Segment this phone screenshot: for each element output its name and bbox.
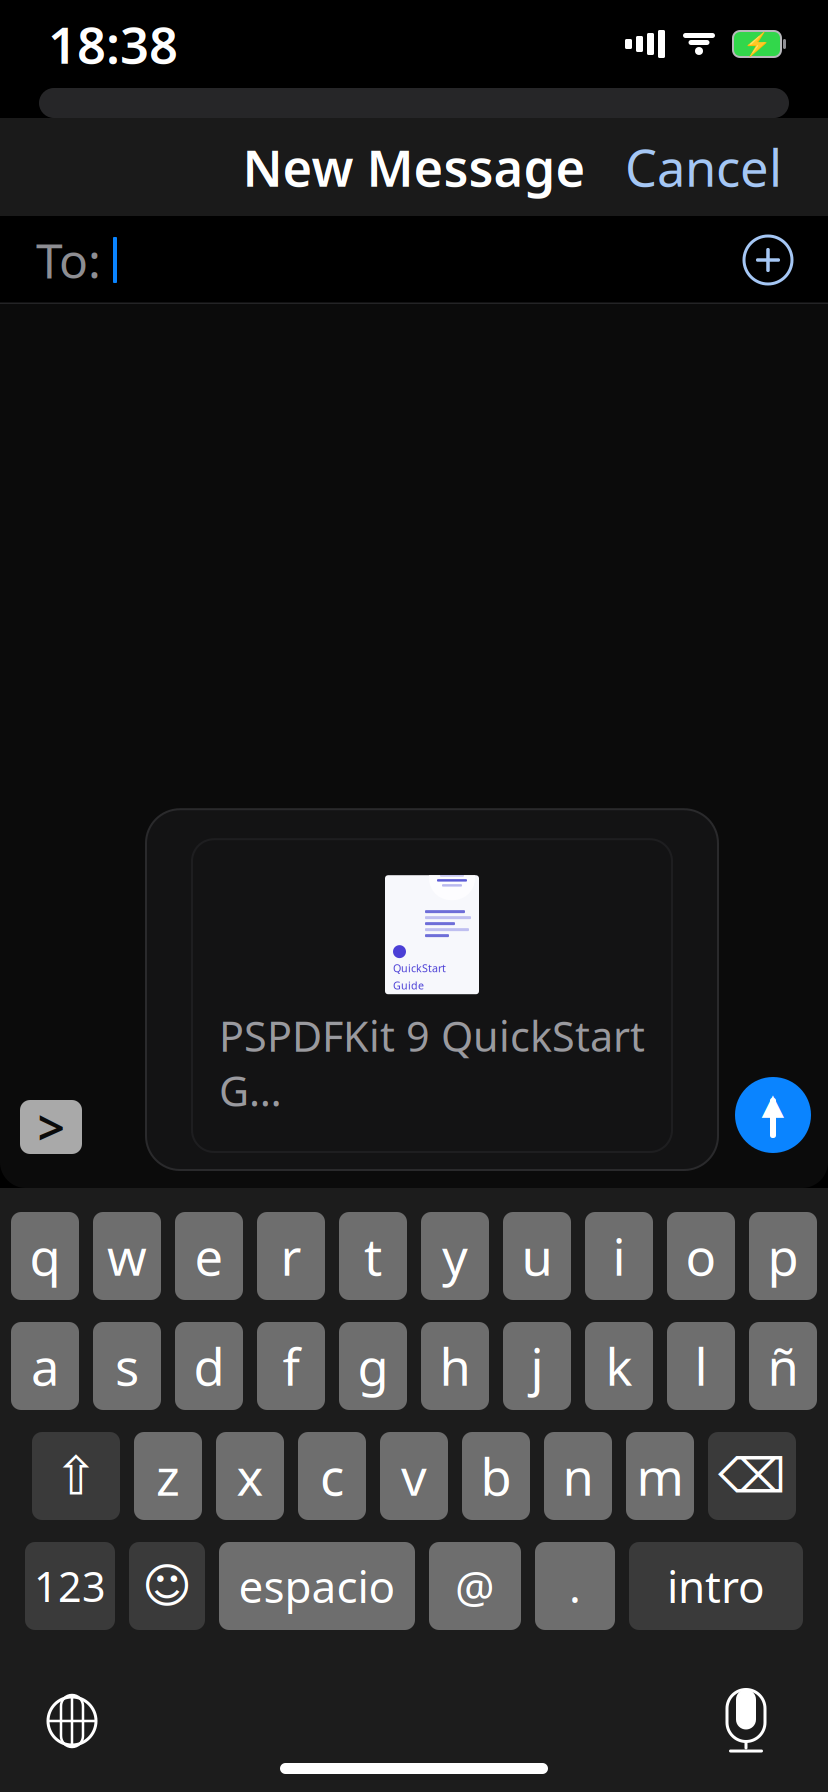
staticText: k <box>605 1332 632 1400</box>
button[interactable]: intro <box>629 1542 803 1630</box>
button[interactable]: Add contact <box>732 224 804 296</box>
staticText: PSPDFKit 9 QuickStart G… <box>219 1008 645 1118</box>
button[interactable]: @ <box>429 1542 521 1630</box>
button[interactable]: . <box>535 1542 615 1630</box>
staticText: v <box>401 1442 427 1510</box>
button[interactable]: w <box>93 1212 161 1300</box>
button[interactable]: Cancel <box>605 117 802 217</box>
staticText: m <box>636 1442 683 1510</box>
staticText: r <box>280 1222 301 1290</box>
button[interactable]: x <box>216 1432 284 1520</box>
button[interactable]: Emoji <box>129 1542 205 1630</box>
button[interactable]: g <box>339 1322 407 1410</box>
staticText: Cancel <box>625 133 782 201</box>
staticText: o <box>685 1222 716 1290</box>
staticText: intro <box>667 1557 765 1615</box>
staticText: ☺ <box>142 1559 192 1613</box>
button[interactable]: p <box>749 1212 817 1300</box>
button[interactable]: espacio <box>219 1542 415 1630</box>
staticText: espacio <box>238 1557 395 1615</box>
button[interactable]: k <box>585 1322 653 1410</box>
button[interactable]: Send <box>718 1060 828 1170</box>
staticText: q <box>29 1222 60 1290</box>
button[interactable]: n <box>544 1432 612 1520</box>
button[interactable]: f <box>257 1322 325 1410</box>
button[interactable]: a <box>11 1322 79 1410</box>
button[interactable]: u <box>503 1212 571 1300</box>
button[interactable]: h <box>421 1322 489 1410</box>
staticText: z <box>156 1442 180 1510</box>
staticText: i <box>612 1222 625 1290</box>
staticText: f <box>282 1332 299 1400</box>
button[interactable]: ñ <box>749 1322 817 1410</box>
staticText: New Message <box>242 133 585 201</box>
staticText: y <box>442 1222 468 1290</box>
staticText: l <box>694 1332 707 1400</box>
staticText: j <box>530 1332 543 1400</box>
staticText: p <box>767 1222 798 1290</box>
staticText: ⌫ <box>718 1449 786 1503</box>
button[interactable]: Next keyboard <box>22 1671 122 1771</box>
button[interactable]: r <box>257 1212 325 1300</box>
staticText: t <box>364 1222 382 1290</box>
staticText: ⚡ <box>743 31 771 57</box>
staticText: w <box>107 1222 147 1290</box>
staticText: ▲ <box>761 1087 784 1121</box>
button[interactable]: i <box>585 1212 653 1300</box>
staticText: 123 <box>34 1559 106 1613</box>
staticText: QuickStart <box>393 961 446 975</box>
button[interactable]: o <box>667 1212 735 1300</box>
button[interactable]: y <box>421 1212 489 1300</box>
button[interactable]: e <box>175 1212 243 1300</box>
staticText: x <box>236 1442 263 1510</box>
button[interactable]: j <box>503 1322 571 1410</box>
staticText: a <box>31 1332 59 1400</box>
button[interactable]: v <box>380 1432 448 1520</box>
staticText: 18:38 <box>48 10 178 78</box>
staticText: u <box>521 1222 552 1290</box>
button[interactable]: Shift <box>32 1432 120 1520</box>
button[interactable]: q <box>11 1212 79 1300</box>
staticText: ⇧ <box>53 1446 98 1506</box>
staticText: h <box>439 1332 470 1400</box>
button[interactable]: c <box>298 1432 366 1520</box>
staticText: @ <box>455 1557 495 1615</box>
staticText: > <box>37 1095 64 1159</box>
button[interactable]: Dictate <box>696 1671 796 1771</box>
button[interactable]: Show apps <box>8 1084 94 1170</box>
button[interactable]: 123 <box>25 1542 115 1630</box>
staticText: . <box>569 1557 581 1615</box>
staticText: b <box>480 1442 511 1510</box>
staticText: n <box>562 1442 593 1510</box>
staticText: Guide <box>393 978 424 992</box>
button[interactable]: m <box>626 1432 694 1520</box>
staticText: s <box>115 1332 139 1400</box>
button[interactable]: b <box>462 1432 530 1520</box>
staticText: e <box>194 1222 223 1290</box>
staticText: d <box>193 1332 224 1400</box>
button[interactable]: l <box>667 1322 735 1410</box>
button[interactable]: Delete <box>708 1432 796 1520</box>
button[interactable]: s <box>93 1322 161 1410</box>
staticText: c <box>320 1442 344 1510</box>
staticText: To: <box>36 228 101 292</box>
staticText: ñ <box>767 1332 798 1400</box>
button[interactable]: t <box>339 1212 407 1300</box>
button[interactable]: z <box>134 1432 202 1520</box>
button[interactable]: d <box>175 1322 243 1410</box>
staticText: g <box>357 1332 388 1400</box>
